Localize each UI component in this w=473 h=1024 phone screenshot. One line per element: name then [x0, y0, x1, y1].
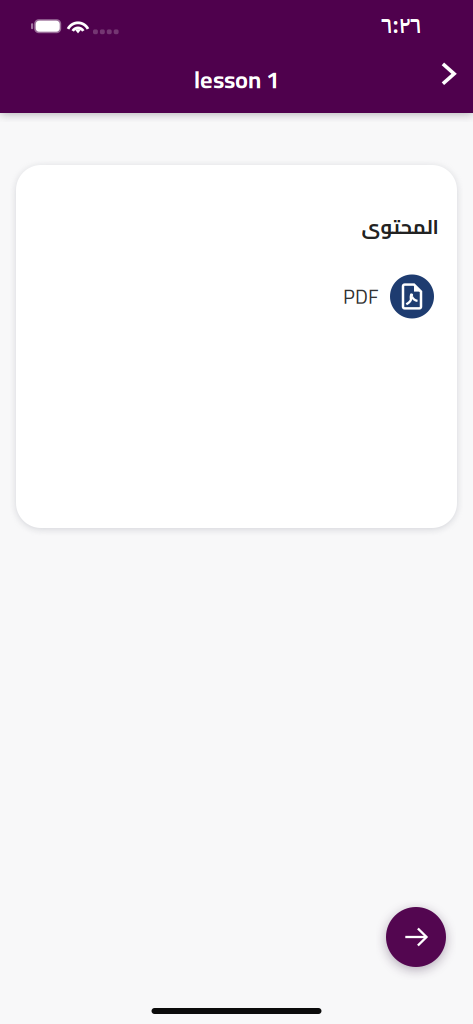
staticText: المحتوى	[361, 208, 438, 245]
button[interactable]: Back	[415, 52, 459, 96]
button[interactable]: Next	[386, 907, 446, 967]
button[interactable]: PDF	[16, 272, 457, 320]
staticText: lesson 1	[194, 57, 279, 102]
staticText: PDF	[343, 278, 379, 315]
staticText: ٦:٢٦	[381, 8, 421, 42]
